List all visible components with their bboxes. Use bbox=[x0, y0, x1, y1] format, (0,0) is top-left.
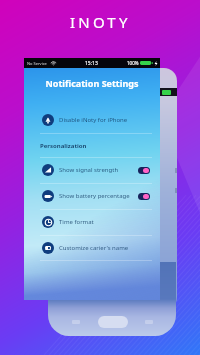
staticText: Show battery percentage bbox=[59, 192, 130, 200]
staticText: 15:13 bbox=[85, 60, 98, 67]
button[interactable]: Customize carier's name bbox=[24, 236, 160, 260]
staticText: INOTY bbox=[70, 12, 131, 32]
staticText: Show signal strength bbox=[59, 166, 119, 174]
button[interactable]: Show battery percentage bbox=[24, 184, 160, 208]
button[interactable]: Toggle Show signal strength bbox=[138, 167, 150, 174]
staticText: Personalization bbox=[40, 142, 87, 150]
staticText: Customize carier's name bbox=[59, 244, 129, 252]
staticText: Disable iNoty for iPhone bbox=[59, 116, 128, 124]
button[interactable]: Toggle Show battery percentage bbox=[138, 193, 150, 200]
button[interactable]: Disable iNoty for iPhone bbox=[24, 108, 160, 132]
button[interactable]: Show signal strength bbox=[24, 158, 160, 182]
button[interactable]: Time format bbox=[24, 210, 160, 234]
staticText: No Service bbox=[27, 61, 47, 66]
staticText: 100% bbox=[127, 60, 139, 66]
button[interactable]: Home bbox=[98, 316, 128, 328]
staticText: Time format bbox=[59, 218, 94, 226]
staticText: Notification Settings bbox=[45, 77, 139, 89]
